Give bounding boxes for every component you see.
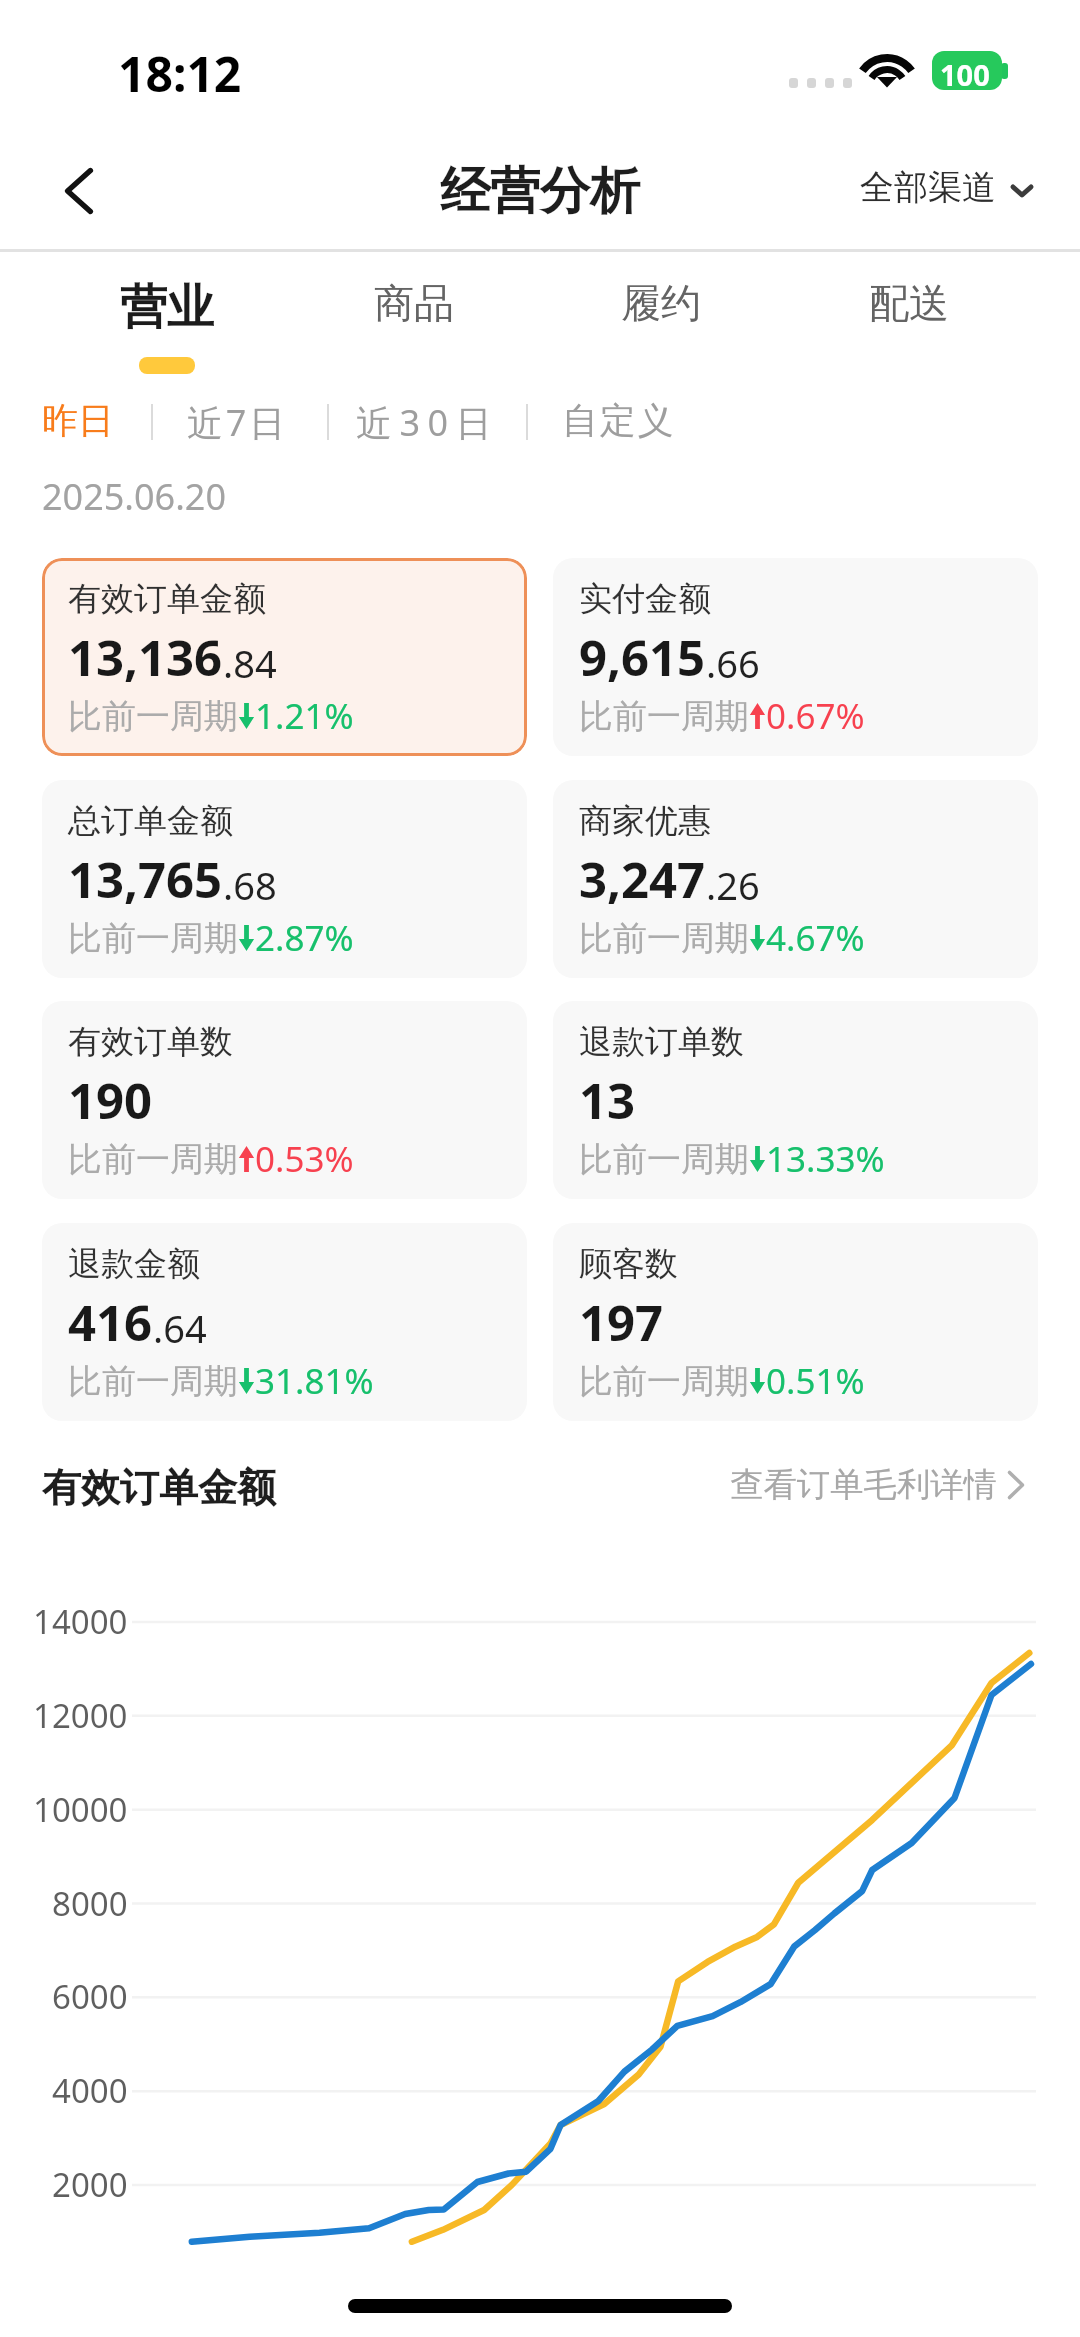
button[interactable]: 配送 <box>845 256 973 376</box>
staticText: 营业 <box>120 278 214 337</box>
button[interactable]: 商品 <box>350 256 478 376</box>
staticText: 13,136 <box>68 624 223 691</box>
staticText: 18:12 <box>118 41 242 106</box>
staticText: 416 <box>68 1289 153 1356</box>
staticText: 100 <box>940 55 990 94</box>
staticText: 比前一周期 <box>68 1138 238 1181</box>
button[interactable]: 总订单金额 <box>42 780 527 978</box>
button[interactable]: 退款金额 <box>42 1223 527 1421</box>
staticText: 比前一周期 <box>579 1138 749 1181</box>
staticText: 自定义 <box>562 398 676 443</box>
staticText: 0.67% <box>766 692 865 740</box>
staticText: 4000 <box>52 2068 128 2113</box>
staticText: 2000 <box>52 2162 128 2207</box>
staticText: .64 <box>153 1302 207 1354</box>
staticText: 0.53% <box>255 1135 354 1183</box>
button[interactable]: 自定义 <box>548 388 662 433</box>
staticText: 实付金额 <box>579 578 711 620</box>
staticText: 退款金额 <box>68 1243 200 1285</box>
button[interactable]: 实付金额 <box>553 558 1038 756</box>
button[interactable]: 商家优惠 <box>553 780 1038 978</box>
staticText: 昨日 <box>42 398 114 443</box>
staticText: 查看订单毛利详情 <box>730 1464 998 1506</box>
staticText: 12000 <box>33 1693 128 1738</box>
staticText: 比前一周期 <box>579 1360 749 1403</box>
button[interactable]: 近7日 <box>173 388 274 437</box>
staticText: 顾客数 <box>579 1243 678 1285</box>
staticText: 2.87% <box>255 914 354 962</box>
staticText: 总订单金额 <box>68 800 233 842</box>
button[interactable]: 履约 <box>597 256 725 376</box>
button[interactable]: Back <box>36 148 122 234</box>
staticText: 有效订单金额 <box>68 578 266 620</box>
button[interactable]: 查看订单毛利详情 <box>718 1464 1024 1506</box>
staticText: 31.81% <box>255 1357 374 1405</box>
staticText: 近7日 <box>187 398 288 447</box>
staticText: 履约 <box>621 278 701 328</box>
staticText: 197 <box>579 1289 664 1356</box>
staticText: 比前一周期 <box>68 695 238 738</box>
staticText: 13 <box>579 1067 636 1134</box>
staticText: .68 <box>223 859 277 911</box>
staticText: 配送 <box>869 278 949 328</box>
staticText: 3,247 <box>579 846 706 913</box>
staticText: 退款订单数 <box>579 1021 744 1063</box>
staticText: 1.21% <box>255 692 354 740</box>
staticText: 有效订单金额 <box>42 1463 276 1512</box>
staticText: 比前一周期 <box>68 1360 238 1403</box>
button[interactable]: 退款订单数 <box>553 1001 1038 1199</box>
staticText: 商家优惠 <box>579 800 711 842</box>
staticText: 6000 <box>52 1974 128 2019</box>
staticText: .26 <box>706 859 760 911</box>
staticText: 比前一周期 <box>579 917 749 960</box>
staticText: 9,615 <box>579 624 706 691</box>
staticText: 14000 <box>33 1599 128 1644</box>
staticText: 2025.06.20 <box>42 472 227 521</box>
staticText: 有效订单数 <box>68 1021 233 1063</box>
button[interactable]: 昨日 <box>28 388 100 433</box>
staticText: .84 <box>223 637 277 689</box>
button[interactable]: 有效订单数 <box>42 1001 527 1199</box>
button[interactable]: 有效订单金额 <box>42 558 527 756</box>
staticText: 13.33% <box>766 1135 885 1183</box>
staticText: 13,765 <box>68 846 223 913</box>
staticText: .66 <box>706 637 760 689</box>
staticText: 0.51% <box>766 1357 865 1405</box>
staticText: 商品 <box>374 278 454 328</box>
button[interactable]: 营业 <box>96 256 238 376</box>
staticText: 经营分析 <box>440 160 640 223</box>
staticText: 近30日 <box>356 398 500 447</box>
staticText: 8000 <box>52 1881 128 1926</box>
staticText: 比前一周期 <box>579 695 749 738</box>
button[interactable]: 近30日 <box>342 388 486 437</box>
staticText: 比前一周期 <box>68 917 238 960</box>
staticText: 4.67% <box>766 914 865 962</box>
staticText: 10000 <box>33 1787 128 1832</box>
button[interactable]: 全部渠道 <box>850 160 1040 218</box>
button[interactable]: 顾客数 <box>553 1223 1038 1421</box>
staticText: 全部渠道 <box>860 166 996 209</box>
staticText: 190 <box>68 1067 153 1134</box>
